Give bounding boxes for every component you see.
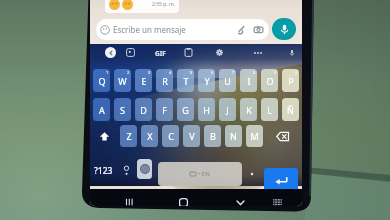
staticText: 5	[190, 70, 193, 75]
button[interactable]: Camara	[253, 24, 264, 35]
button[interactable]: Z	[120, 125, 137, 147]
button[interactable]: Recientes	[122, 195, 136, 206]
button[interactable]: Adjuntar	[236, 24, 247, 35]
button[interactable]: Dictado por voz	[288, 49, 296, 57]
button[interactable]: F	[156, 98, 173, 121]
button[interactable]: E	[135, 69, 152, 92]
button[interactable]: • EN	[158, 162, 242, 186]
staticText: C	[168, 130, 174, 142]
staticText: 3	[148, 70, 151, 75]
button[interactable]: W	[114, 69, 131, 92]
staticText: Escribe un mensaje	[113, 24, 186, 35]
button[interactable]: I	[240, 69, 257, 92]
button[interactable]: N	[225, 125, 242, 147]
button[interactable]: V	[183, 125, 200, 147]
button[interactable]: H	[198, 98, 215, 121]
button[interactable]: Enter	[264, 168, 298, 193]
staticText: V	[189, 130, 195, 142]
button[interactable]: S	[114, 98, 131, 121]
staticText: F	[162, 104, 167, 116]
button[interactable]: GIF	[152, 48, 168, 59]
button[interactable]: X	[141, 125, 158, 147]
staticText: Q	[98, 75, 106, 87]
staticText: A	[99, 104, 105, 116]
button[interactable]: P	[282, 69, 299, 92]
staticText: Z	[126, 130, 132, 142]
staticText: • EN	[198, 170, 210, 178]
staticText: N	[230, 130, 237, 142]
button[interactable]: Mas opciones	[254, 52, 262, 54]
staticText: R	[162, 75, 168, 87]
button[interactable]: Atras	[105, 47, 116, 58]
staticText: P	[288, 75, 294, 87]
button[interactable]: Ñ	[282, 98, 299, 121]
staticText: I	[247, 75, 251, 87]
staticText: Ñ	[287, 104, 294, 116]
staticText: 1	[106, 70, 109, 75]
button[interactable]: Y	[198, 69, 215, 92]
button[interactable]: A	[93, 98, 110, 121]
staticText: W	[118, 75, 127, 87]
button[interactable]: Mensaje de voz	[272, 18, 296, 40]
staticText: 9	[274, 70, 277, 75]
button[interactable]: ?123	[91, 158, 115, 183]
button[interactable]: Punto	[245, 161, 258, 185]
staticText: ?123	[94, 165, 113, 177]
button[interactable]: Borrar	[271, 125, 294, 147]
staticText: D	[140, 104, 147, 116]
staticText: GIF	[155, 49, 166, 58]
staticText: X	[147, 130, 153, 142]
staticText: E	[141, 75, 147, 87]
button[interactable]: G	[177, 98, 194, 121]
button[interactable]: Stickers	[126, 48, 135, 57]
staticText: G	[182, 104, 189, 116]
staticText: 2:55 p. m.	[152, 1, 175, 8]
staticText: S	[120, 104, 125, 116]
staticText: L	[267, 104, 272, 116]
button[interactable]: Escribe un mensaje	[96, 19, 269, 40]
button[interactable]: M	[246, 125, 263, 147]
button[interactable]: Portapapeles	[184, 48, 193, 57]
staticText: T	[183, 75, 189, 87]
button[interactable]: O	[261, 69, 278, 92]
button[interactable]: R	[156, 69, 173, 92]
button[interactable]: J	[219, 98, 236, 121]
button[interactable]: Ocultar teclado	[233, 195, 247, 206]
staticText: M	[250, 130, 259, 142]
staticText: U	[224, 75, 231, 87]
button[interactable]: Ajustes	[216, 49, 223, 56]
button[interactable]: Cambiar idioma	[137, 159, 152, 179]
button[interactable]: B	[204, 125, 221, 147]
button[interactable]: T	[177, 69, 194, 92]
staticText: 4	[169, 70, 172, 75]
button[interactable]: Inicio	[176, 195, 190, 206]
button[interactable]: Mayusculas	[94, 125, 114, 147]
staticText: H	[203, 104, 210, 116]
button[interactable]: C	[162, 125, 179, 147]
staticText: J	[226, 104, 229, 116]
button[interactable]: U	[219, 69, 236, 92]
staticText: 6	[211, 70, 214, 75]
staticText: 8	[253, 70, 256, 75]
staticText: 2	[127, 70, 130, 75]
staticText: K	[246, 104, 252, 116]
staticText: 7	[232, 70, 235, 75]
button[interactable]: L	[261, 98, 278, 121]
button[interactable]: Coma	[120, 158, 132, 183]
staticText: B	[210, 130, 216, 142]
button[interactable]: Cambiar teclado	[270, 195, 284, 206]
button[interactable]: D	[135, 98, 152, 121]
staticText: Y	[204, 75, 210, 87]
button[interactable]: Q	[93, 69, 110, 92]
staticText: O	[266, 75, 274, 87]
staticText: 0	[295, 70, 298, 75]
button[interactable]: K	[240, 98, 257, 121]
